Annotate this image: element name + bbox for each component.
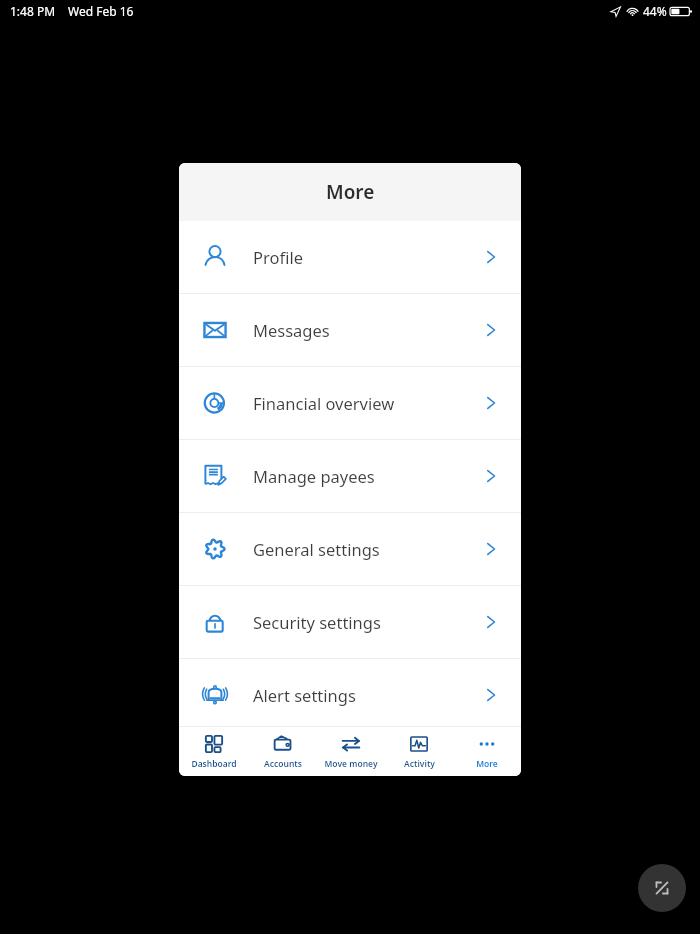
staticText: Financial overview	[253, 392, 483, 414]
button[interactable]: Move money	[317, 727, 385, 776]
button[interactable]: Messages	[179, 294, 521, 366]
staticText: Dashboard	[191, 758, 237, 770]
staticText: Accounts	[264, 758, 302, 770]
staticText: Alert settings	[253, 684, 483, 706]
button[interactable]: Expand	[638, 864, 686, 912]
button[interactable]: Financial overview	[179, 367, 521, 439]
staticText: Messages	[253, 319, 483, 341]
button[interactable]: Alert settings	[179, 659, 521, 731]
staticText: More	[326, 179, 375, 205]
button[interactable]: Manage payees	[179, 440, 521, 512]
button[interactable]: More	[453, 727, 521, 776]
staticText: Activity	[404, 758, 435, 770]
staticText: Profile	[253, 246, 483, 268]
staticText: Manage payees	[253, 465, 483, 487]
staticText: More	[476, 758, 498, 770]
button[interactable]: Activity	[385, 727, 453, 776]
staticText: 1:48 PM	[10, 3, 56, 19]
button[interactable]: General settings	[179, 513, 521, 585]
staticText: General settings	[253, 538, 483, 560]
staticText: 44%	[643, 3, 667, 19]
button[interactable]: Accounts	[248, 727, 317, 776]
button[interactable]: Dashboard	[179, 727, 248, 776]
staticText: Wed Feb 16	[68, 3, 134, 19]
button[interactable]: Profile	[179, 221, 521, 293]
staticText: Move money	[324, 758, 378, 770]
button[interactable]: Security settings	[179, 586, 521, 658]
staticText: Security settings	[253, 611, 483, 633]
